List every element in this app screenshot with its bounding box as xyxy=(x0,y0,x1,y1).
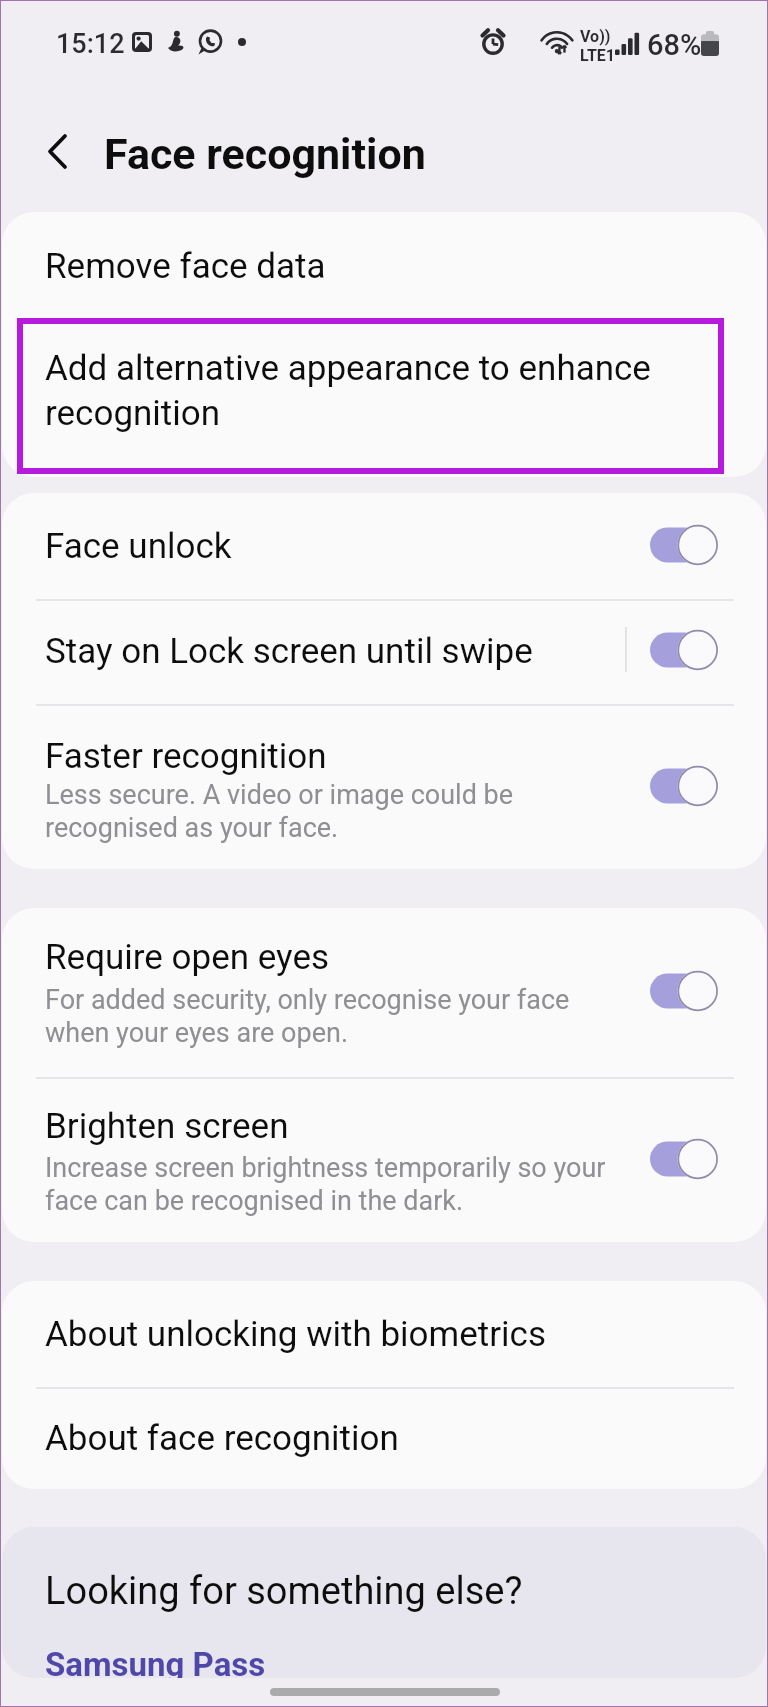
staticText: Less secure. A video or image could be r… xyxy=(45,779,514,844)
staticText: For added security, only recognise your … xyxy=(45,984,570,1049)
staticText: Brighten screen xyxy=(45,1106,289,1147)
button[interactable] xyxy=(2,908,766,1075)
staticText: Increase screen brightness temporarily s… xyxy=(45,1152,606,1217)
staticText: Faster recognition xyxy=(45,736,327,777)
button[interactable]: Toggle xyxy=(650,629,718,671)
button[interactable] xyxy=(2,1385,766,1489)
button[interactable] xyxy=(2,1075,766,1242)
staticText: Require open eyes xyxy=(45,937,330,978)
staticText: About unlocking with biometrics xyxy=(45,1314,547,1355)
button[interactable] xyxy=(2,702,766,869)
button[interactable]: Toggle xyxy=(650,524,718,566)
staticText: Face unlock xyxy=(45,526,232,567)
button[interactable]: Toggle xyxy=(650,970,718,1012)
button[interactable] xyxy=(2,212,766,319)
staticText: Vo)) xyxy=(580,27,611,46)
staticText: Face recognition xyxy=(104,129,426,179)
staticText: Add alternative appearance to enhance re… xyxy=(45,348,685,433)
staticText: Looking for something else? xyxy=(45,1569,523,1614)
button[interactable] xyxy=(2,319,766,469)
button[interactable] xyxy=(2,597,766,702)
button[interactable]: Back xyxy=(26,120,90,184)
button[interactable]: Toggle xyxy=(650,765,718,807)
staticText: 68% xyxy=(647,28,702,62)
staticText: Stay on Lock screen until swipe xyxy=(45,631,533,672)
staticText: Remove face data xyxy=(45,246,326,287)
staticText: 15:12 xyxy=(56,28,125,60)
button[interactable] xyxy=(2,493,766,597)
staticText: LTE1 xyxy=(580,46,615,65)
staticText: Samsung Pass xyxy=(45,1645,266,1678)
button[interactable]: Samsung Pass xyxy=(45,1645,266,1678)
button[interactable] xyxy=(2,1281,766,1385)
button[interactable]: Toggle xyxy=(650,1138,718,1180)
staticText: About face recognition xyxy=(45,1418,399,1459)
